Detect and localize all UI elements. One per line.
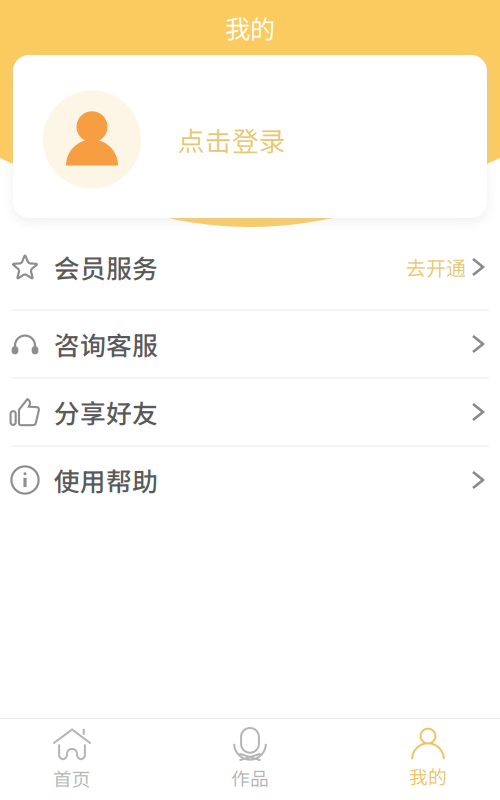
button[interactable]: 首页 bbox=[0, 719, 161, 800]
staticText: 我的 bbox=[409, 762, 447, 789]
staticText: 点击登录 bbox=[178, 120, 286, 159]
staticText: 去开通 bbox=[406, 252, 466, 281]
staticText: 咨询客服 bbox=[54, 325, 158, 363]
staticText: 使用帮助 bbox=[54, 461, 158, 499]
button[interactable]: 咨询客服 bbox=[0, 311, 500, 377]
staticText: 首页 bbox=[53, 764, 91, 791]
button[interactable]: 我的 bbox=[339, 719, 500, 800]
button[interactable]: 会员服务 bbox=[0, 235, 500, 309]
staticText: 作品 bbox=[231, 764, 269, 791]
button[interactable]: 分享好友 bbox=[0, 379, 500, 445]
button[interactable]: 作品 bbox=[161, 719, 339, 800]
staticText: 会员服务 bbox=[54, 248, 158, 286]
button[interactable]: 使用帮助 bbox=[0, 447, 500, 513]
staticText: 我的 bbox=[225, 9, 275, 46]
staticText: 分享好友 bbox=[54, 393, 158, 431]
